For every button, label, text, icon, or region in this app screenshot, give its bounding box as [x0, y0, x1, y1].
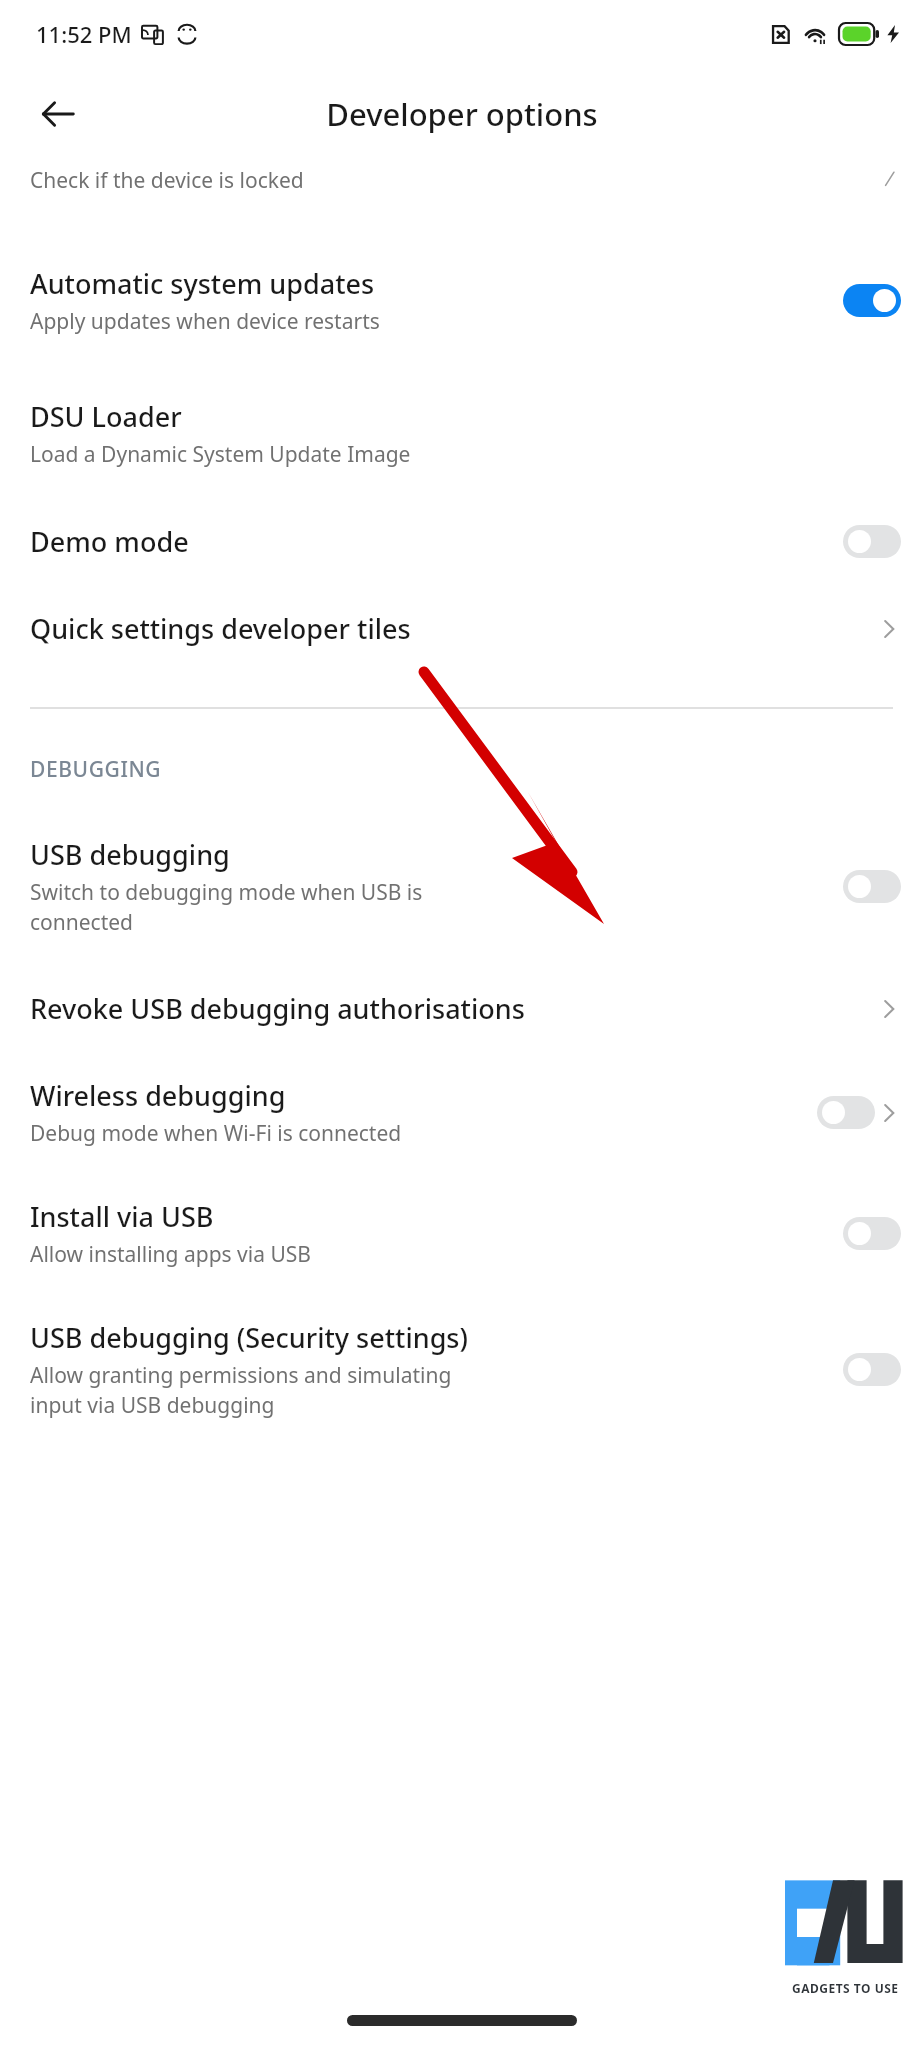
button[interactable]: Revoke USB debugging authorisations: [0, 982, 923, 1035]
button[interactable]: USB debugging (Security settings): [0, 1311, 923, 1427]
button[interactable]: Check if the device is locked: [0, 160, 923, 205]
staticText: Allow installing apps via USB: [30, 1240, 311, 1269]
staticText: DEBUGGING: [30, 755, 162, 784]
button[interactable]: DSU Loader: [0, 390, 923, 477]
staticText: Allow granting permissions and simulatin…: [30, 1361, 452, 1419]
button[interactable]: Back: [30, 86, 86, 142]
staticText: Install via USB: [30, 1198, 214, 1235]
button[interactable]: Demo mode: [0, 513, 923, 570]
staticText: Check if the device is locked: [30, 166, 879, 195]
staticText: USB debugging (Security settings): [30, 1319, 468, 1356]
button[interactable]: USB debugging: [0, 828, 923, 944]
staticText: Load a Dynamic System Update Image: [30, 440, 411, 469]
staticText: Demo mode: [30, 523, 189, 560]
staticText: Quick settings developer tiles: [30, 610, 411, 647]
button[interactable]: Wireless debugging: [0, 1069, 923, 1156]
staticText: DSU Loader: [30, 398, 182, 435]
staticText: 11:52 PM: [36, 19, 132, 49]
button[interactable]: Quick settings developer tiles: [0, 602, 923, 655]
staticText: GADGETS TO USE: [792, 1980, 899, 1996]
staticText: Wireless debugging: [30, 1077, 286, 1114]
staticText: Revoke USB debugging authorisations: [30, 990, 525, 1027]
staticText: Debug mode when Wi-Fi is connected: [30, 1119, 402, 1148]
staticText: USB debugging: [30, 836, 230, 873]
button[interactable]: Automatic system updates: [0, 255, 923, 346]
button[interactable]: Install via USB: [0, 1190, 923, 1277]
staticText: Developer options: [326, 93, 598, 135]
staticText: Switch to debugging mode when USB is con…: [30, 878, 423, 936]
staticText: Automatic system updates: [30, 265, 375, 302]
staticText: Apply updates when device restarts: [30, 307, 380, 336]
